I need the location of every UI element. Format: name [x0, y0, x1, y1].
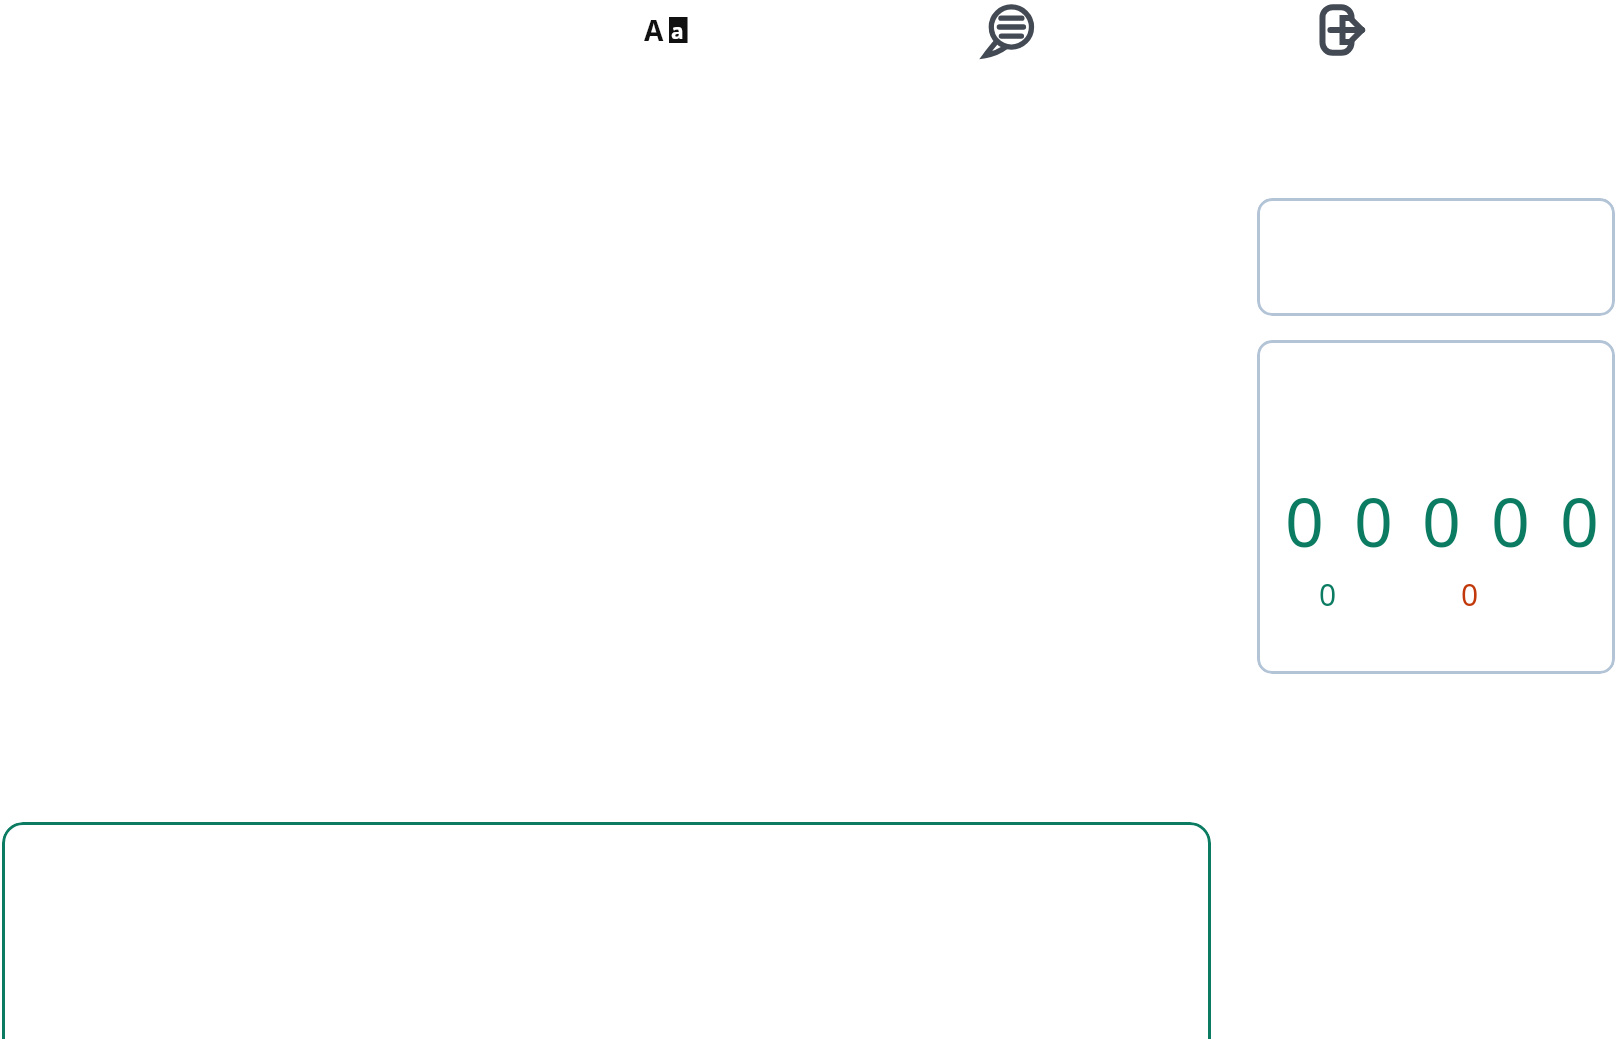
staticText: 0: [1560, 474, 1599, 567]
staticText: A: [644, 11, 664, 49]
button[interactable]: [1257, 198, 1615, 316]
staticText: 0: [1491, 474, 1530, 567]
button[interactable]: 0: [1257, 340, 1615, 674]
staticText: 0: [1461, 574, 1479, 615]
button[interactable]: [2, 822, 1211, 1039]
button[interactable]: Messages: [975, 0, 1045, 60]
button[interactable]: Text size: [632, 3, 706, 53]
staticText: a: [671, 17, 684, 46]
button[interactable]: Log out: [1304, 0, 1370, 60]
staticText: 0: [1319, 574, 1337, 615]
staticText: 0: [1354, 474, 1393, 567]
staticText: 0: [1285, 474, 1324, 567]
staticText: 0: [1422, 474, 1461, 567]
